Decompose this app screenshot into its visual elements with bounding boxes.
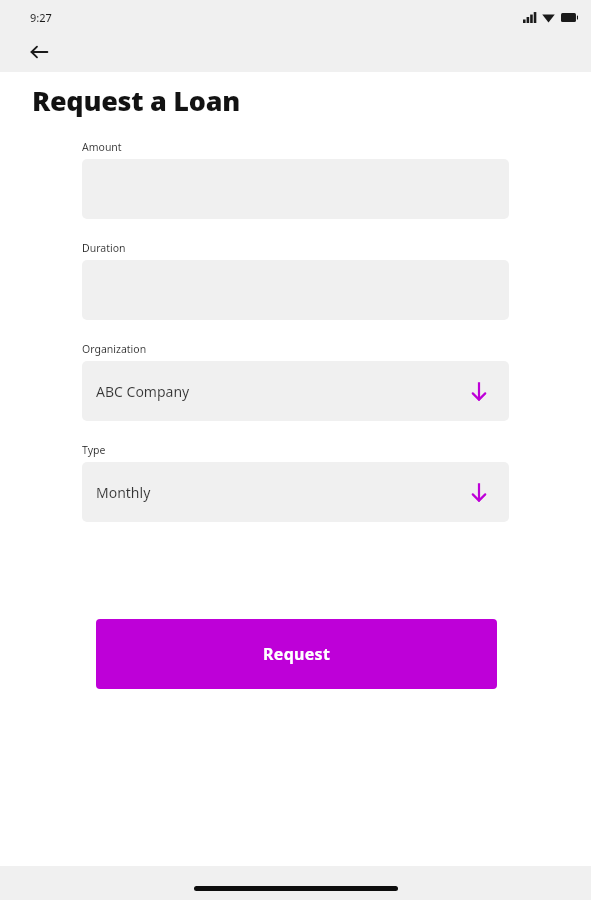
staticText: Organization [82, 342, 147, 356]
staticText: Amount [82, 140, 122, 154]
staticText: Monthly [96, 483, 151, 502]
button[interactable]: Request [96, 619, 497, 689]
staticText: Duration [82, 241, 126, 255]
button[interactable]: ABC Company [82, 361, 509, 421]
staticText: Request [263, 643, 331, 665]
staticText: Type [82, 443, 106, 457]
button[interactable]: Monthly [82, 462, 509, 522]
staticText: ABC Company [96, 382, 190, 401]
staticText: Request a Loan [32, 82, 240, 119]
staticText: 9:27 [30, 10, 52, 25]
button[interactable]: Back [22, 35, 56, 69]
